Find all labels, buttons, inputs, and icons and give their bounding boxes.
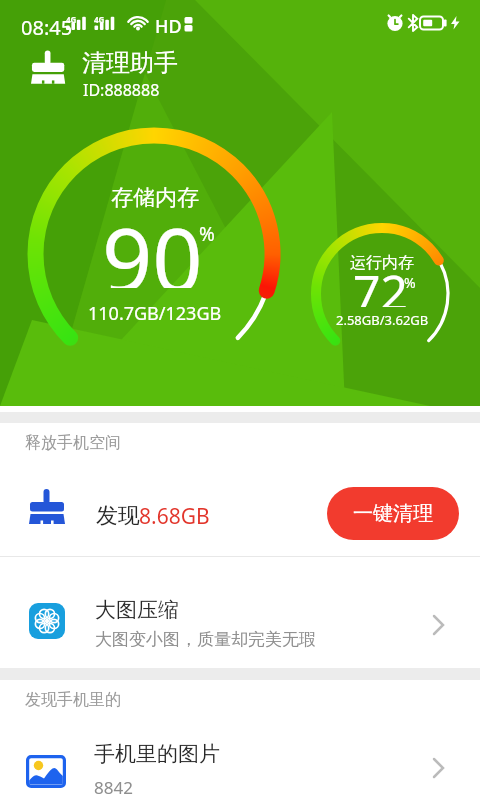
staticText: 大图压缩 — [95, 597, 179, 621]
button[interactable]: 大图压缩 — [0, 580, 480, 668]
staticText: 08:45 — [21, 14, 73, 41]
button[interactable]: 发现 — [0, 472, 480, 554]
staticText: % — [404, 273, 416, 292]
staticText: 110.7GB/123GB — [88, 301, 222, 326]
staticText: 8842 — [94, 776, 133, 798]
staticText: 72 — [353, 259, 408, 307]
staticText: ID:888888 — [83, 79, 160, 101]
staticText: % — [199, 221, 215, 247]
staticText: 释放手机空间 — [25, 433, 121, 453]
staticText: 4G — [66, 14, 77, 24]
staticText: 发现 — [96, 502, 140, 526]
staticText: 存储内存 — [111, 184, 199, 212]
staticText: 手机里的图片 — [94, 741, 220, 765]
staticText: 运行内存 — [350, 253, 414, 271]
button[interactable]: 手机里的图片 — [0, 726, 480, 800]
staticText: 8.68GB — [139, 502, 210, 526]
staticText: 4G — [94, 14, 105, 24]
staticText: 发现手机里的 — [25, 690, 121, 710]
staticText: 大图变小图，质量却完美无瑕 — [95, 629, 316, 650]
staticText: 清理助手 — [82, 48, 178, 78]
staticText: 一键清理 — [353, 501, 433, 526]
staticText: HD — [155, 14, 182, 39]
staticText: 2.58GB/3.62GB — [336, 311, 429, 327]
button[interactable]: 一键清理 — [327, 487, 459, 540]
staticText: 90 — [102, 198, 203, 288]
